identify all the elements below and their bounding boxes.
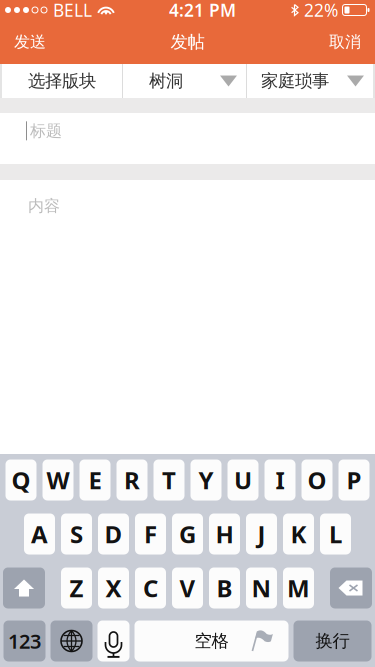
button[interactable]: Y	[190, 459, 221, 500]
staticText: I	[275, 464, 284, 496]
staticText: A	[31, 518, 48, 550]
staticText: G	[179, 518, 196, 550]
button[interactable]: S	[61, 513, 92, 554]
staticText: 123	[8, 628, 41, 654]
staticText: X	[105, 572, 121, 604]
staticText: J	[257, 518, 265, 550]
staticText: BELL	[53, 0, 92, 21]
button[interactable]: 选择版块	[2, 64, 122, 98]
staticText: S	[70, 518, 83, 550]
staticText: W	[46, 464, 69, 496]
button[interactable]: W	[42, 459, 73, 500]
button[interactable]: 家庭琐事	[247, 64, 373, 98]
button[interactable]: Delete	[330, 567, 372, 608]
button[interactable]: E	[79, 459, 110, 500]
staticText: L	[329, 518, 342, 550]
button[interactable]: Shift	[3, 567, 45, 608]
staticText: U	[234, 464, 252, 496]
staticText: N	[251, 572, 271, 604]
staticText: 换行	[315, 630, 349, 652]
button[interactable]: X	[98, 567, 129, 608]
staticText: P	[346, 464, 361, 496]
staticText: 选择版块	[28, 70, 96, 92]
button[interactable]: Next keyboard	[50, 620, 92, 661]
button[interactable]: K	[283, 513, 314, 554]
button[interactable]: N	[246, 567, 277, 608]
button[interactable]: F	[135, 513, 166, 554]
button[interactable]: 123	[3, 620, 45, 661]
staticText: C	[143, 572, 158, 604]
staticText: Y	[198, 464, 213, 496]
button[interactable]: Z	[61, 567, 92, 608]
staticText: H	[215, 518, 233, 550]
button[interactable]: 发送	[0, 22, 56, 62]
staticText: 家庭琐事	[261, 70, 329, 92]
staticText: 标题	[30, 121, 62, 141]
staticText: 22%	[304, 0, 338, 21]
staticText: O	[307, 464, 326, 496]
staticText: 取消	[329, 32, 361, 52]
staticText: K	[290, 518, 306, 550]
button[interactable]: 换行	[293, 620, 371, 661]
staticText: M	[287, 572, 310, 604]
button[interactable]: 取消	[319, 22, 375, 62]
button[interactable]: T	[153, 459, 184, 500]
staticText: 发送	[14, 32, 46, 52]
button[interactable]: J	[246, 513, 277, 554]
button[interactable]: P	[338, 459, 369, 500]
staticText: B	[216, 572, 232, 604]
button[interactable]: Q	[5, 459, 36, 500]
button[interactable]: 空格	[134, 620, 288, 661]
button[interactable]: M	[283, 567, 314, 608]
button[interactable]: B	[209, 567, 240, 608]
staticText: R	[124, 464, 140, 496]
staticText: F	[144, 518, 157, 550]
button[interactable]: Dictate	[97, 620, 129, 661]
staticText: D	[104, 518, 122, 550]
button[interactable]: O	[301, 459, 332, 500]
staticText: Q	[11, 464, 30, 496]
button[interactable]: H	[209, 513, 240, 554]
button[interactable]: I	[264, 459, 295, 500]
button[interactable]: C	[135, 567, 166, 608]
staticText: T	[162, 464, 176, 496]
staticText: 树洞	[149, 70, 183, 92]
staticText: 内容	[28, 196, 60, 216]
button[interactable]: 树洞	[123, 64, 246, 98]
button[interactable]: R	[116, 459, 147, 500]
button[interactable]: A	[24, 513, 55, 554]
staticText: 发帖	[170, 31, 204, 53]
staticText: 4:21 PM	[169, 0, 236, 21]
button[interactable]: L	[320, 513, 351, 554]
button[interactable]: D	[98, 513, 129, 554]
button[interactable]: U	[227, 459, 258, 500]
button[interactable]: G	[172, 513, 203, 554]
staticText: Z	[69, 572, 83, 604]
staticText: 空格	[194, 630, 228, 652]
staticText: V	[179, 572, 195, 604]
staticText: E	[88, 464, 101, 496]
button[interactable]: V	[172, 567, 203, 608]
